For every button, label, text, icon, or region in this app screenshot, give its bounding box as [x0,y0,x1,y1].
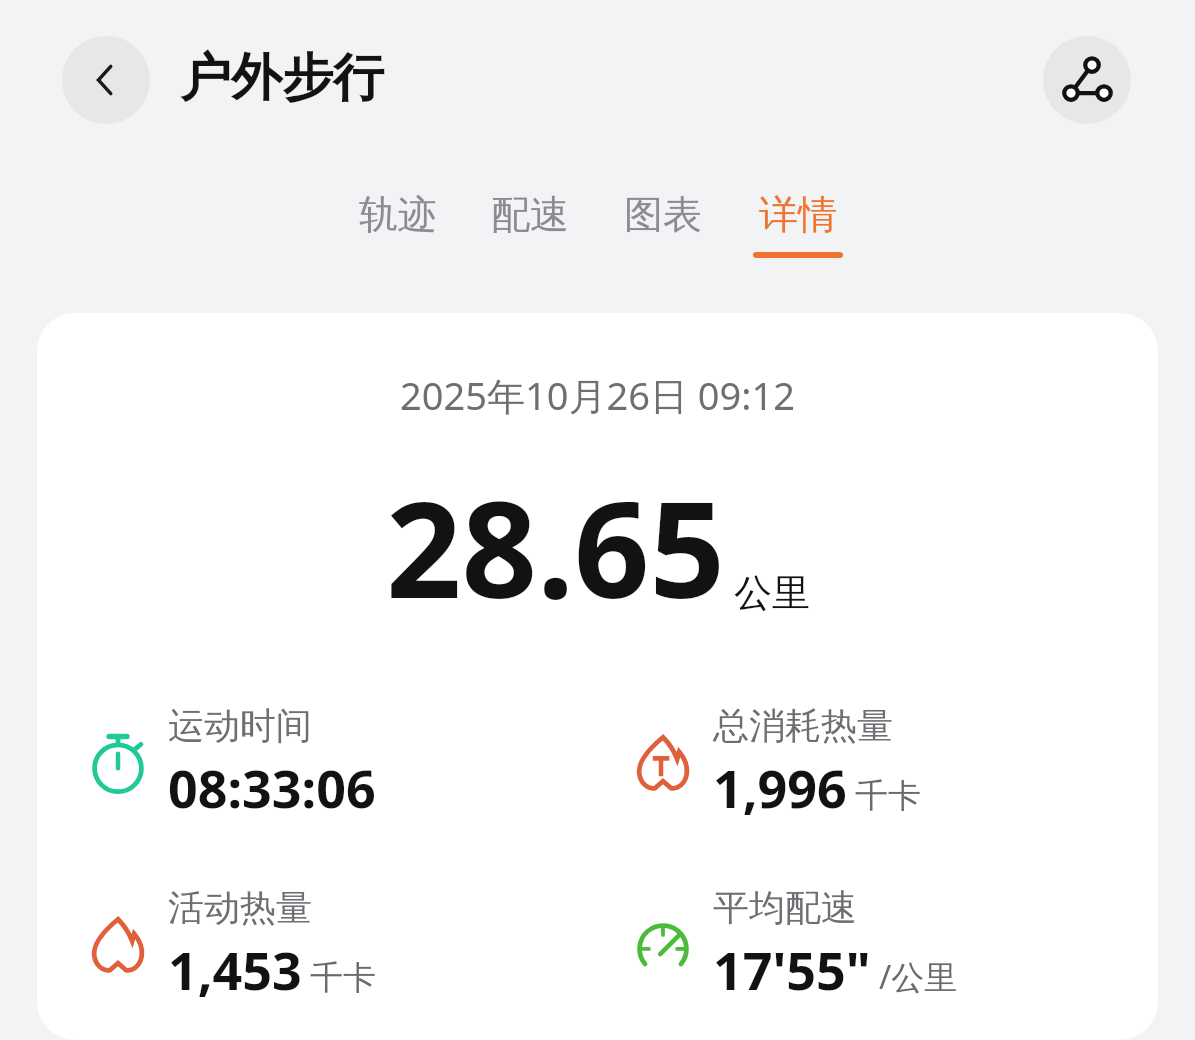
staticText: 2025年10月26日 09:12 [37,369,1158,421]
button[interactable]: 运动时间 [82,703,597,823]
staticText: 公里 [734,569,810,617]
button[interactable]: 轨迹 [355,190,441,274]
button[interactable]: 详情 [753,190,843,274]
staticText: /公里 [879,954,958,999]
staticText: 1,996 [713,752,847,823]
staticText: 活动热量 [168,885,312,930]
button[interactable]: Share [1043,36,1131,124]
staticText: 户外步行 [180,46,384,110]
staticText: 平均配速 [713,885,857,930]
staticText: 轨迹 [359,190,437,239]
button[interactable]: 平均配速 [627,885,1158,1005]
staticText: 千卡 [310,957,376,999]
staticText: 17'55" [713,934,871,1005]
staticText: 图表 [624,190,702,239]
staticText: 1,453 [168,934,302,1005]
button[interactable]: 图表 [620,190,706,274]
button[interactable]: 总消耗热量 [627,703,1158,823]
button[interactable]: 配速 [487,190,573,274]
staticText: 千卡 [855,775,921,817]
button[interactable]: 活动热量 [82,885,597,1005]
staticText: 28.65 [386,457,726,637]
staticText: 08:33:06 [168,752,376,823]
staticText: 运动时间 [168,703,312,748]
button[interactable]: Back [62,36,150,124]
staticText: 配速 [491,190,569,239]
staticText: 详情 [759,190,837,239]
staticText: 总消耗热量 [713,703,893,748]
